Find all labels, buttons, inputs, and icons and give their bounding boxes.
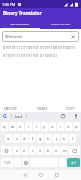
button[interactable]: a bbox=[5, 134, 12, 143]
button[interactable] bbox=[69, 146, 80, 155]
button[interactable]: ENCODE bbox=[4, 106, 18, 110]
staticText: o bbox=[67, 124, 70, 129]
staticText: a bbox=[7, 136, 10, 141]
staticText: 01010111 01100101 01101100 01100011 bbox=[3, 45, 76, 50]
button[interactable]: d bbox=[21, 134, 28, 143]
button[interactable] bbox=[55, 173, 59, 177]
button[interactable]: COPY bbox=[66, 106, 75, 110]
button[interactable] bbox=[74, 114, 78, 119]
staticText: BINARY TO TEXT bbox=[51, 22, 71, 25]
button[interactable]: m bbox=[61, 146, 68, 155]
button[interactable]: l bbox=[69, 134, 76, 143]
button[interactable] bbox=[1, 146, 12, 155]
staticText: c bbox=[32, 148, 34, 153]
button[interactable]: q bbox=[1, 122, 8, 131]
staticText: f bbox=[32, 136, 34, 141]
staticText: Binary Translator bbox=[3, 10, 42, 16]
staticText: . bbox=[62, 160, 64, 165]
staticText: x bbox=[23, 148, 26, 153]
staticText: q bbox=[3, 124, 6, 129]
staticText: 1:06 PM bbox=[2, 2, 16, 7]
button[interactable]: x bbox=[21, 146, 28, 155]
button[interactable]: i bbox=[57, 122, 64, 131]
button[interactable]: r bbox=[25, 122, 32, 131]
staticText: m bbox=[63, 148, 67, 153]
button[interactable] bbox=[23, 173, 27, 177]
button[interactable]: o bbox=[65, 122, 72, 131]
staticText: g bbox=[39, 136, 42, 141]
staticText: 01101111 01101101 01100101 bbox=[3, 53, 58, 58]
button[interactable]: k bbox=[61, 134, 68, 143]
staticText: w bbox=[11, 124, 15, 129]
button[interactable]: c bbox=[29, 146, 36, 155]
button[interactable]: p bbox=[73, 122, 80, 131]
button[interactable] bbox=[67, 158, 80, 167]
button[interactable]: Welcome bbox=[2, 31, 79, 42]
staticText: u bbox=[51, 124, 54, 129]
staticText: r bbox=[28, 124, 30, 129]
staticText: ?123 bbox=[4, 161, 11, 165]
button[interactable]: G bbox=[3, 113, 7, 120]
button[interactable] bbox=[22, 158, 29, 167]
staticText: b bbox=[47, 148, 50, 153]
button[interactable] bbox=[39, 173, 43, 177]
staticText: p bbox=[75, 124, 78, 129]
button[interactable]: w bbox=[9, 122, 16, 131]
button[interactable]: BINARY TO TEXT bbox=[40, 18, 81, 28]
staticText: y bbox=[43, 124, 46, 129]
button[interactable]: h bbox=[45, 134, 52, 143]
button[interactable]: n bbox=[53, 146, 60, 155]
staticText: v bbox=[39, 148, 42, 153]
button[interactable] bbox=[61, 114, 65, 119]
button[interactable]: SHARE bbox=[37, 106, 48, 110]
button[interactable]: e bbox=[17, 122, 24, 131]
staticText: i bbox=[60, 124, 62, 129]
button[interactable]: y bbox=[41, 122, 48, 131]
button[interactable]: v bbox=[37, 146, 44, 155]
staticText: l bbox=[72, 136, 74, 141]
staticText: k bbox=[63, 136, 66, 141]
staticText: TEXT TO BINARY bbox=[10, 22, 30, 25]
button[interactable]: b bbox=[45, 146, 52, 155]
button[interactable]: t bbox=[33, 122, 40, 131]
button[interactable]: , bbox=[14, 158, 21, 167]
button[interactable]: back bbox=[15, 114, 23, 119]
button[interactable]: j bbox=[53, 134, 60, 143]
staticText: n bbox=[55, 148, 58, 153]
button[interactable]: g bbox=[37, 134, 44, 143]
staticText: h bbox=[47, 136, 50, 141]
staticText: z bbox=[16, 148, 18, 153]
button[interactable]: ?123 bbox=[1, 158, 13, 167]
staticText: s bbox=[16, 136, 18, 141]
staticText: t bbox=[36, 124, 38, 129]
button[interactable]: TEXT TO BINARY bbox=[0, 18, 40, 28]
button[interactable]: s bbox=[13, 134, 20, 143]
staticText: Welcome bbox=[5, 34, 23, 39]
button[interactable]: u bbox=[49, 122, 56, 131]
staticText: , bbox=[17, 160, 19, 165]
button[interactable]: f bbox=[29, 134, 36, 143]
staticText: d bbox=[23, 136, 26, 141]
staticText: j bbox=[56, 136, 58, 141]
staticText: e bbox=[19, 124, 22, 129]
button[interactable]: . bbox=[59, 158, 66, 167]
button[interactable]: z bbox=[13, 146, 20, 155]
